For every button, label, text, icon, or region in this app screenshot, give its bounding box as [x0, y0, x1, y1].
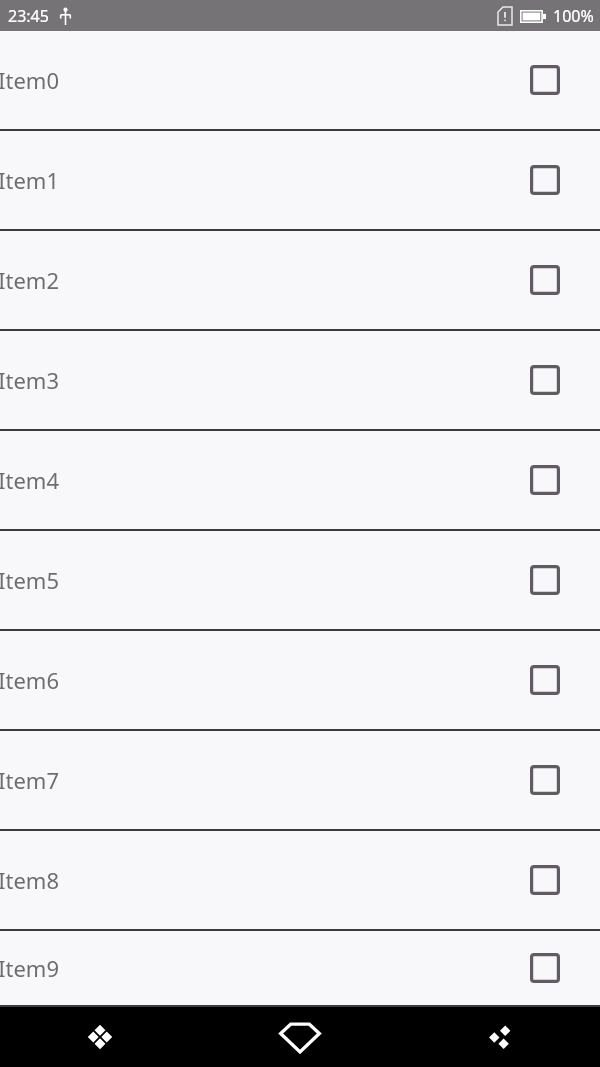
- button[interactable]: Checkbox Item7: [525, 760, 565, 800]
- button[interactable]: Back: [0, 1007, 200, 1067]
- button[interactable]: Checkbox Item5: [525, 560, 565, 600]
- button[interactable]: Item7: [0, 731, 600, 831]
- button[interactable]: Item4: [0, 431, 600, 531]
- button[interactable]: Checkbox Item3: [525, 360, 565, 400]
- staticText: Item1: [0, 165, 523, 195]
- button[interactable]: Recent apps: [400, 1007, 600, 1067]
- button[interactable]: Checkbox Item1: [525, 160, 565, 200]
- button[interactable]: Checkbox Item0: [525, 60, 565, 100]
- staticText: Item4: [0, 465, 523, 495]
- staticText: Item3: [0, 365, 523, 395]
- button[interactable]: Item3: [0, 331, 600, 431]
- button[interactable]: Item8: [0, 831, 600, 931]
- staticText: Item5: [0, 565, 523, 595]
- staticText: Item2: [0, 265, 523, 295]
- staticText: Item0: [0, 65, 523, 95]
- button[interactable]: Item6: [0, 631, 600, 731]
- button[interactable]: Checkbox Item6: [525, 660, 565, 700]
- button[interactable]: Item1: [0, 131, 600, 231]
- button[interactable]: Checkbox Item8: [525, 860, 565, 900]
- button[interactable]: Item9: [0, 931, 600, 1007]
- staticText: Item9: [0, 953, 523, 983]
- staticText: 100%: [553, 5, 594, 27]
- button[interactable]: Checkbox Item9: [525, 948, 565, 988]
- staticText: Item6: [0, 665, 523, 695]
- button[interactable]: Item0: [0, 31, 600, 131]
- button[interactable]: Checkbox Item2: [525, 260, 565, 300]
- staticText: Item7: [0, 765, 523, 795]
- button[interactable]: Home: [200, 1007, 400, 1067]
- staticText: Item8: [0, 865, 523, 895]
- staticText: 23:45: [8, 5, 49, 27]
- button[interactable]: Item5: [0, 531, 600, 631]
- button[interactable]: Checkbox Item4: [525, 460, 565, 500]
- button[interactable]: Item2: [0, 231, 600, 331]
